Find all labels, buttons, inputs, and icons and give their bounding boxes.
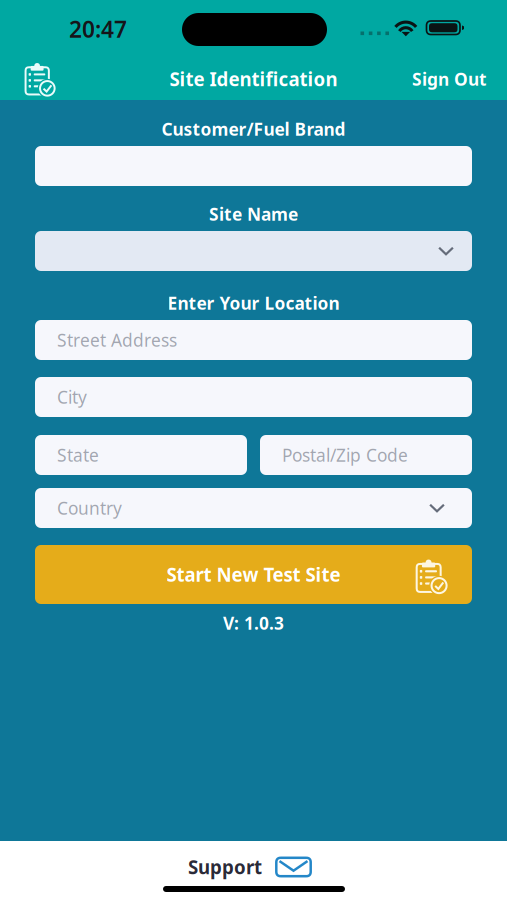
staticText: 20:47 — [69, 14, 127, 44]
staticText: Site Name — [209, 202, 298, 225]
button[interactable]: Postal/Zip Code — [260, 435, 472, 475]
button[interactable]: Country — [35, 488, 472, 528]
button[interactable]: Support — [178, 850, 322, 884]
button[interactable] — [35, 146, 472, 186]
button[interactable] — [35, 231, 472, 271]
staticText: Support — [188, 855, 262, 879]
staticText: Start New Test Site — [166, 562, 340, 587]
staticText: City — [57, 385, 87, 408]
staticText: Sign Out — [412, 67, 487, 90]
button[interactable]: Sign Out — [392, 58, 507, 100]
staticText: Enter Your Location — [167, 291, 339, 314]
staticText: State — [57, 443, 99, 466]
button[interactable]: Start New Test Site — [35, 545, 472, 604]
staticText: Country — [57, 496, 122, 519]
staticText: V: 1.0.3 — [223, 611, 284, 634]
button[interactable]: State — [35, 435, 247, 475]
staticText: Postal/Zip Code — [282, 443, 408, 466]
staticText: Site Identification — [169, 67, 337, 91]
staticText: Street Address — [57, 328, 177, 351]
button[interactable]: City — [35, 377, 472, 417]
button[interactable]: Site list — [0, 58, 68, 100]
staticText: Customer/Fuel Brand — [161, 117, 345, 140]
button[interactable]: Street Address — [35, 320, 472, 360]
